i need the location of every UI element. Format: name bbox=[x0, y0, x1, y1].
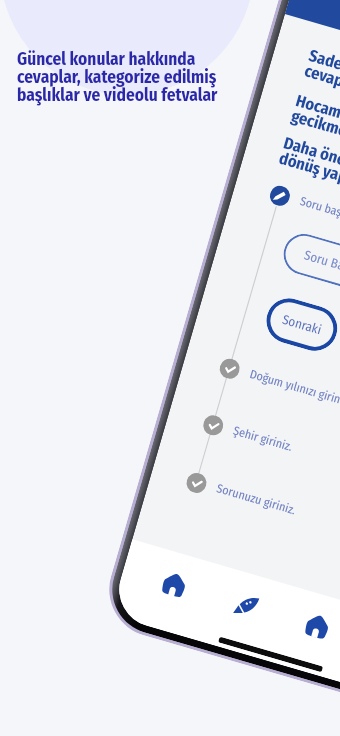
staticText: Soru başlığını giriniz. bbox=[298, 194, 340, 236]
staticText: Şehir giriniz. bbox=[232, 423, 294, 454]
button[interactable]: Edit question title bbox=[267, 183, 292, 208]
button[interactable]: Şehir giriniz. bbox=[201, 413, 226, 438]
button[interactable]: Sorunuzu giriniz. bbox=[184, 471, 209, 495]
staticText: Hocamızdan gecikmeden dönüş bbox=[289, 91, 340, 162]
staticText: Soru Başlığı bbox=[302, 247, 340, 280]
button[interactable]: Home bbox=[147, 557, 201, 612]
button[interactable]: Categories bbox=[290, 599, 340, 654]
button[interactable]: Discover bbox=[219, 578, 273, 633]
button[interactable]: Sonraki bbox=[261, 293, 340, 356]
button[interactable]: Doğum yılınızı giriniz. bbox=[217, 356, 242, 381]
staticText: Sade ve anlaşılır cevaplar bbox=[302, 46, 340, 112]
staticText: Sorunuzu giriniz. bbox=[215, 481, 298, 517]
staticText: Doğum yılınızı giriniz. bbox=[248, 367, 340, 410]
staticText: Sonraki bbox=[280, 312, 323, 338]
button[interactable]: Soru Başlığı bbox=[279, 229, 340, 341]
staticText: Güncel konular hakkında cevaplar, katego… bbox=[17, 49, 218, 105]
staticText: Daha önce sorulmuşsa dönüş yapılmaz bbox=[277, 133, 340, 211]
